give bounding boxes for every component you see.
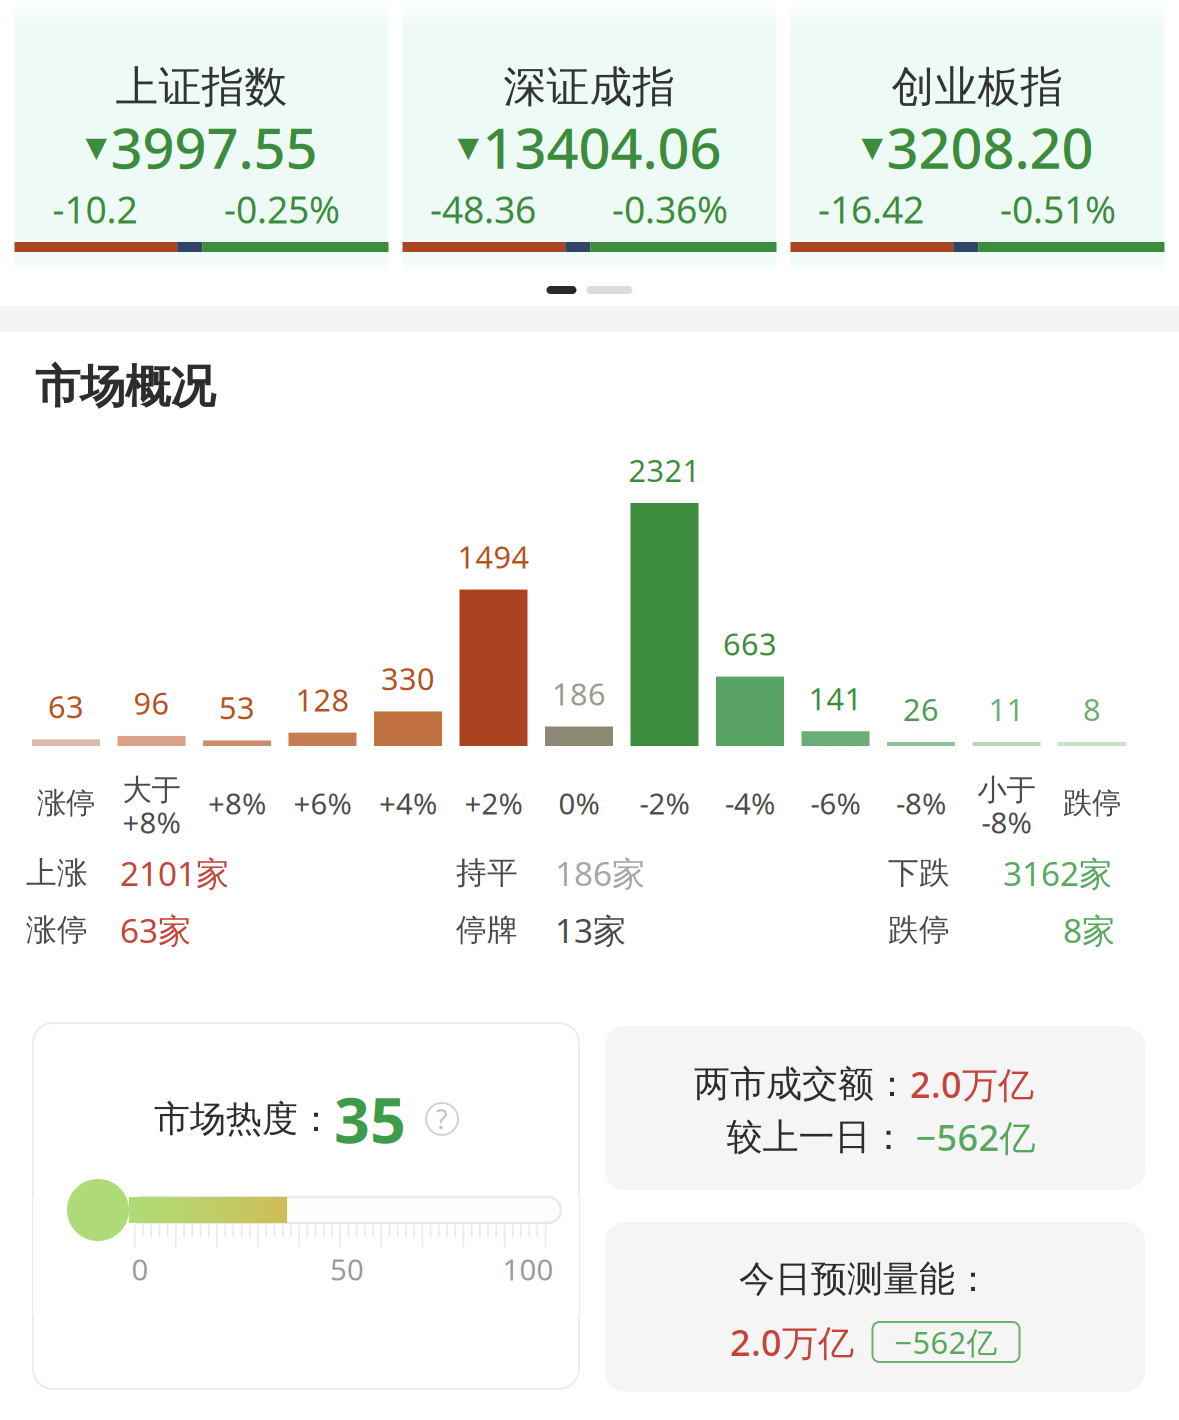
staticText: 跌停: [1063, 785, 1121, 821]
staticText: 停牌: [456, 911, 518, 949]
staticText: 市场概况: [35, 359, 215, 415]
staticText: -16.42: [818, 184, 924, 234]
staticText: 今日预测量能：: [739, 1257, 991, 1301]
staticText: +4%: [379, 783, 437, 822]
staticText: 涨停: [26, 911, 88, 949]
staticText: ▼: [457, 131, 479, 163]
staticText: 128: [295, 679, 349, 720]
staticText: -8%: [896, 783, 946, 822]
staticText: +8%: [208, 783, 266, 822]
staticText: 3162家: [1003, 851, 1112, 895]
staticText: −562亿: [894, 1322, 997, 1362]
staticText: -48.36: [430, 184, 536, 234]
staticText: +2%: [464, 783, 522, 822]
staticText: 2.0万亿: [910, 1060, 1034, 1108]
staticText: 13家: [555, 908, 626, 952]
staticText: 涨停: [37, 785, 95, 821]
staticText: 8家: [1063, 908, 1115, 952]
staticText: 63家: [120, 908, 191, 952]
staticText: 2321: [628, 450, 700, 490]
staticText: -0.36%: [612, 184, 728, 234]
staticText: 下跌: [888, 854, 950, 892]
button[interactable]: 深证成指: [402, 0, 776, 271]
staticText: 小于: [977, 772, 1035, 808]
staticText: 663: [723, 623, 777, 664]
staticText: 8: [1083, 689, 1101, 729]
staticText: -0.25%: [224, 184, 340, 234]
staticText: 上证指数: [115, 61, 287, 113]
button[interactable]: 今日预测量能：: [605, 1222, 1145, 1392]
staticText: 186: [552, 673, 606, 714]
staticText: 35: [334, 1077, 406, 1161]
staticText: -0.51%: [1000, 184, 1116, 234]
staticText: 26: [903, 689, 939, 729]
staticText: 141: [808, 678, 862, 719]
staticText: 0: [131, 1249, 148, 1288]
button[interactable]: 创业板指: [790, 0, 1164, 271]
staticText: 大于: [122, 772, 180, 808]
staticText: −562亿: [906, 1113, 1035, 1161]
staticText: 1494: [457, 536, 529, 577]
staticText: 63: [48, 686, 84, 727]
staticText: 11: [988, 689, 1024, 729]
staticText: -6%: [810, 783, 860, 822]
staticText: 3997.55: [110, 110, 317, 184]
staticText: ▼: [85, 131, 107, 163]
staticText: -2%: [639, 783, 689, 822]
staticText: 53: [219, 687, 255, 728]
staticText: 3208.20: [886, 110, 1093, 184]
staticText: 100: [502, 1249, 553, 1288]
button[interactable]: 两市成交额：: [605, 1026, 1145, 1190]
staticText: -4%: [725, 783, 775, 822]
staticText: 较上一日：: [726, 1115, 906, 1159]
staticText: ?: [436, 1101, 448, 1137]
staticText: 186家: [555, 851, 645, 895]
staticText: 跌停: [888, 911, 950, 949]
staticText: 持平: [456, 854, 518, 892]
staticText: 0%: [558, 783, 599, 822]
staticText: ▼: [861, 131, 883, 163]
staticText: 上涨: [26, 854, 88, 892]
staticText: 深证成指: [503, 61, 675, 113]
staticText: 13404.06: [482, 110, 721, 184]
staticText: 2.0万亿: [730, 1318, 854, 1366]
staticText: +8%: [122, 802, 180, 841]
button[interactable]: 上证指数: [14, 0, 388, 271]
staticText: 50: [330, 1249, 364, 1288]
staticText: 330: [381, 658, 435, 699]
button[interactable]: 市场热度：: [33, 1023, 579, 1389]
staticText: 市场热度：: [154, 1097, 334, 1141]
staticText: -8%: [981, 802, 1031, 841]
staticText: 2101家: [120, 851, 229, 895]
staticText: -10.2: [52, 184, 137, 234]
staticText: 96: [133, 683, 169, 723]
staticText: 创业板指: [891, 61, 1063, 113]
staticText: 两市成交额：: [694, 1062, 910, 1106]
staticText: +6%: [293, 783, 351, 822]
